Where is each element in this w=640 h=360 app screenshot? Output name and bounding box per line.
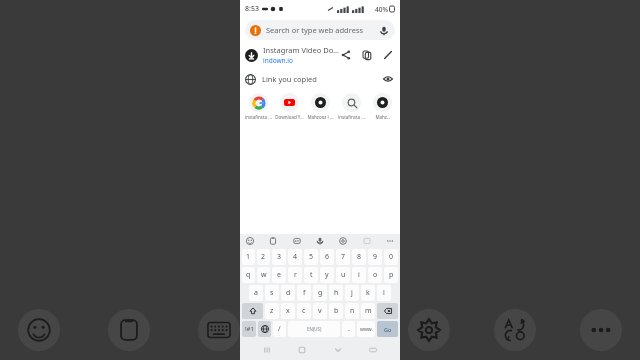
button[interactable]: 3 xyxy=(272,249,286,265)
staticText: x xyxy=(286,306,290,316)
button[interactable]: 9 xyxy=(368,249,382,265)
button[interactable]: Instagram Video Downl... xyxy=(240,42,400,68)
button[interactable]: c xyxy=(297,303,311,319)
staticText: 0 xyxy=(389,252,394,262)
button[interactable]: . xyxy=(342,321,355,337)
button[interactable]: Translate xyxy=(494,309,536,351)
staticText: 2 xyxy=(261,252,266,262)
button[interactable]: o xyxy=(368,267,382,283)
button[interactable]: 5 xyxy=(304,249,318,265)
button[interactable]: 6 xyxy=(320,249,334,265)
button[interactable]: Keyboard layout xyxy=(364,341,382,359)
staticText: l xyxy=(383,288,385,298)
button[interactable]: 2 xyxy=(257,249,270,265)
staticText: 3 xyxy=(277,252,282,262)
staticText: k xyxy=(366,288,370,298)
staticText: 9 xyxy=(373,252,378,262)
button[interactable]: b xyxy=(329,303,343,319)
button[interactable]: 1 xyxy=(242,249,255,265)
button[interactable]: Recents xyxy=(258,341,276,359)
staticText: EN(US) xyxy=(307,326,322,332)
button[interactable]: Link you copied xyxy=(240,68,400,90)
button[interactable]: More options xyxy=(580,309,622,351)
button[interactable]: Language xyxy=(258,321,271,337)
button[interactable]: instafinsta ... xyxy=(243,93,274,120)
button[interactable]: i xyxy=(352,267,366,283)
button[interactable]: e xyxy=(272,267,286,283)
button[interactable]: s xyxy=(265,285,279,301)
button[interactable]: r xyxy=(288,267,302,283)
button[interactable]: q xyxy=(242,267,255,283)
staticText: n xyxy=(350,306,355,316)
button[interactable]: x xyxy=(281,303,295,319)
staticText: Instagram Video Downl... xyxy=(263,45,339,55)
button[interactable]: !#1 xyxy=(242,321,256,337)
staticText: b xyxy=(334,306,339,316)
button[interactable]: www. xyxy=(357,321,375,337)
button[interactable]: Backspace xyxy=(377,303,398,319)
staticText: Mahz... xyxy=(375,114,391,120)
button[interactable]: Mahz... xyxy=(367,93,398,120)
staticText: 8 xyxy=(357,252,362,262)
button[interactable]: Show link xyxy=(381,72,395,86)
button[interactable]: l xyxy=(377,285,391,301)
button[interactable]: Voice input xyxy=(314,235,326,247)
button[interactable]: Mahzooz l ... xyxy=(305,93,336,120)
button[interactable]: Clipboard xyxy=(267,235,279,247)
staticText: s xyxy=(270,288,274,298)
staticText: d xyxy=(286,288,291,298)
button[interactable]: Theme xyxy=(361,235,373,247)
button[interactable]: Settings xyxy=(408,309,450,351)
button[interactable]: n xyxy=(345,303,359,319)
staticText: Link you copied xyxy=(262,74,317,84)
staticText: f xyxy=(303,288,306,298)
button[interactable]: Download Y... xyxy=(274,93,305,120)
button[interactable]: f xyxy=(297,285,311,301)
staticText: indown.io xyxy=(263,56,293,65)
button[interactable]: y xyxy=(320,267,334,283)
staticText: 1 xyxy=(246,252,251,262)
button[interactable]: j xyxy=(345,285,359,301)
button[interactable]: t xyxy=(304,267,318,283)
button[interactable]: More xyxy=(384,235,396,247)
staticText: Go xyxy=(384,326,392,333)
button[interactable]: Emoji xyxy=(18,309,60,351)
button[interactable]: Share xyxy=(339,48,353,62)
button[interactable]: p xyxy=(384,267,398,283)
button[interactable]: Keyboard xyxy=(198,309,240,351)
button[interactable]: / xyxy=(273,321,286,337)
button[interactable]: Settings xyxy=(337,235,349,247)
button[interactable]: a xyxy=(249,285,263,301)
staticText: Search or type web address xyxy=(266,25,364,35)
button[interactable]: w xyxy=(257,267,270,283)
staticText: y xyxy=(325,270,329,280)
button[interactable]: instafinsta ... xyxy=(336,93,367,120)
button[interactable]: v xyxy=(313,303,327,319)
button[interactable]: Shift xyxy=(242,303,263,319)
button[interactable]: u xyxy=(336,267,350,283)
button[interactable]: h xyxy=(329,285,343,301)
button[interactable]: k xyxy=(361,285,375,301)
staticText: 5 xyxy=(309,252,314,262)
button[interactable]: Home xyxy=(293,341,311,359)
button[interactable]: Copy xyxy=(360,48,374,62)
button[interactable]: EN(US) xyxy=(288,321,340,337)
button[interactable]: 0 xyxy=(384,249,398,265)
button[interactable]: Hide keyboard xyxy=(329,341,347,359)
button[interactable]: Stickers xyxy=(291,235,303,247)
button[interactable]: m xyxy=(361,303,375,319)
staticText: Mahzooz l ... xyxy=(307,114,334,120)
button[interactable]: z xyxy=(265,303,279,319)
button[interactable]: Clipboard xyxy=(108,309,150,351)
button[interactable]: 8 xyxy=(352,249,366,265)
button[interactable]: Edit xyxy=(381,48,395,62)
button[interactable]: Go xyxy=(377,321,398,337)
button[interactable]: Search or type web address xyxy=(245,20,395,40)
button[interactable]: Voice search xyxy=(377,24,390,37)
button[interactable]: Emoji xyxy=(244,235,256,247)
button[interactable]: d xyxy=(281,285,295,301)
button[interactable]: 7 xyxy=(336,249,350,265)
button[interactable]: g xyxy=(313,285,327,301)
button[interactable]: 4 xyxy=(288,249,302,265)
staticText: g xyxy=(318,288,323,298)
